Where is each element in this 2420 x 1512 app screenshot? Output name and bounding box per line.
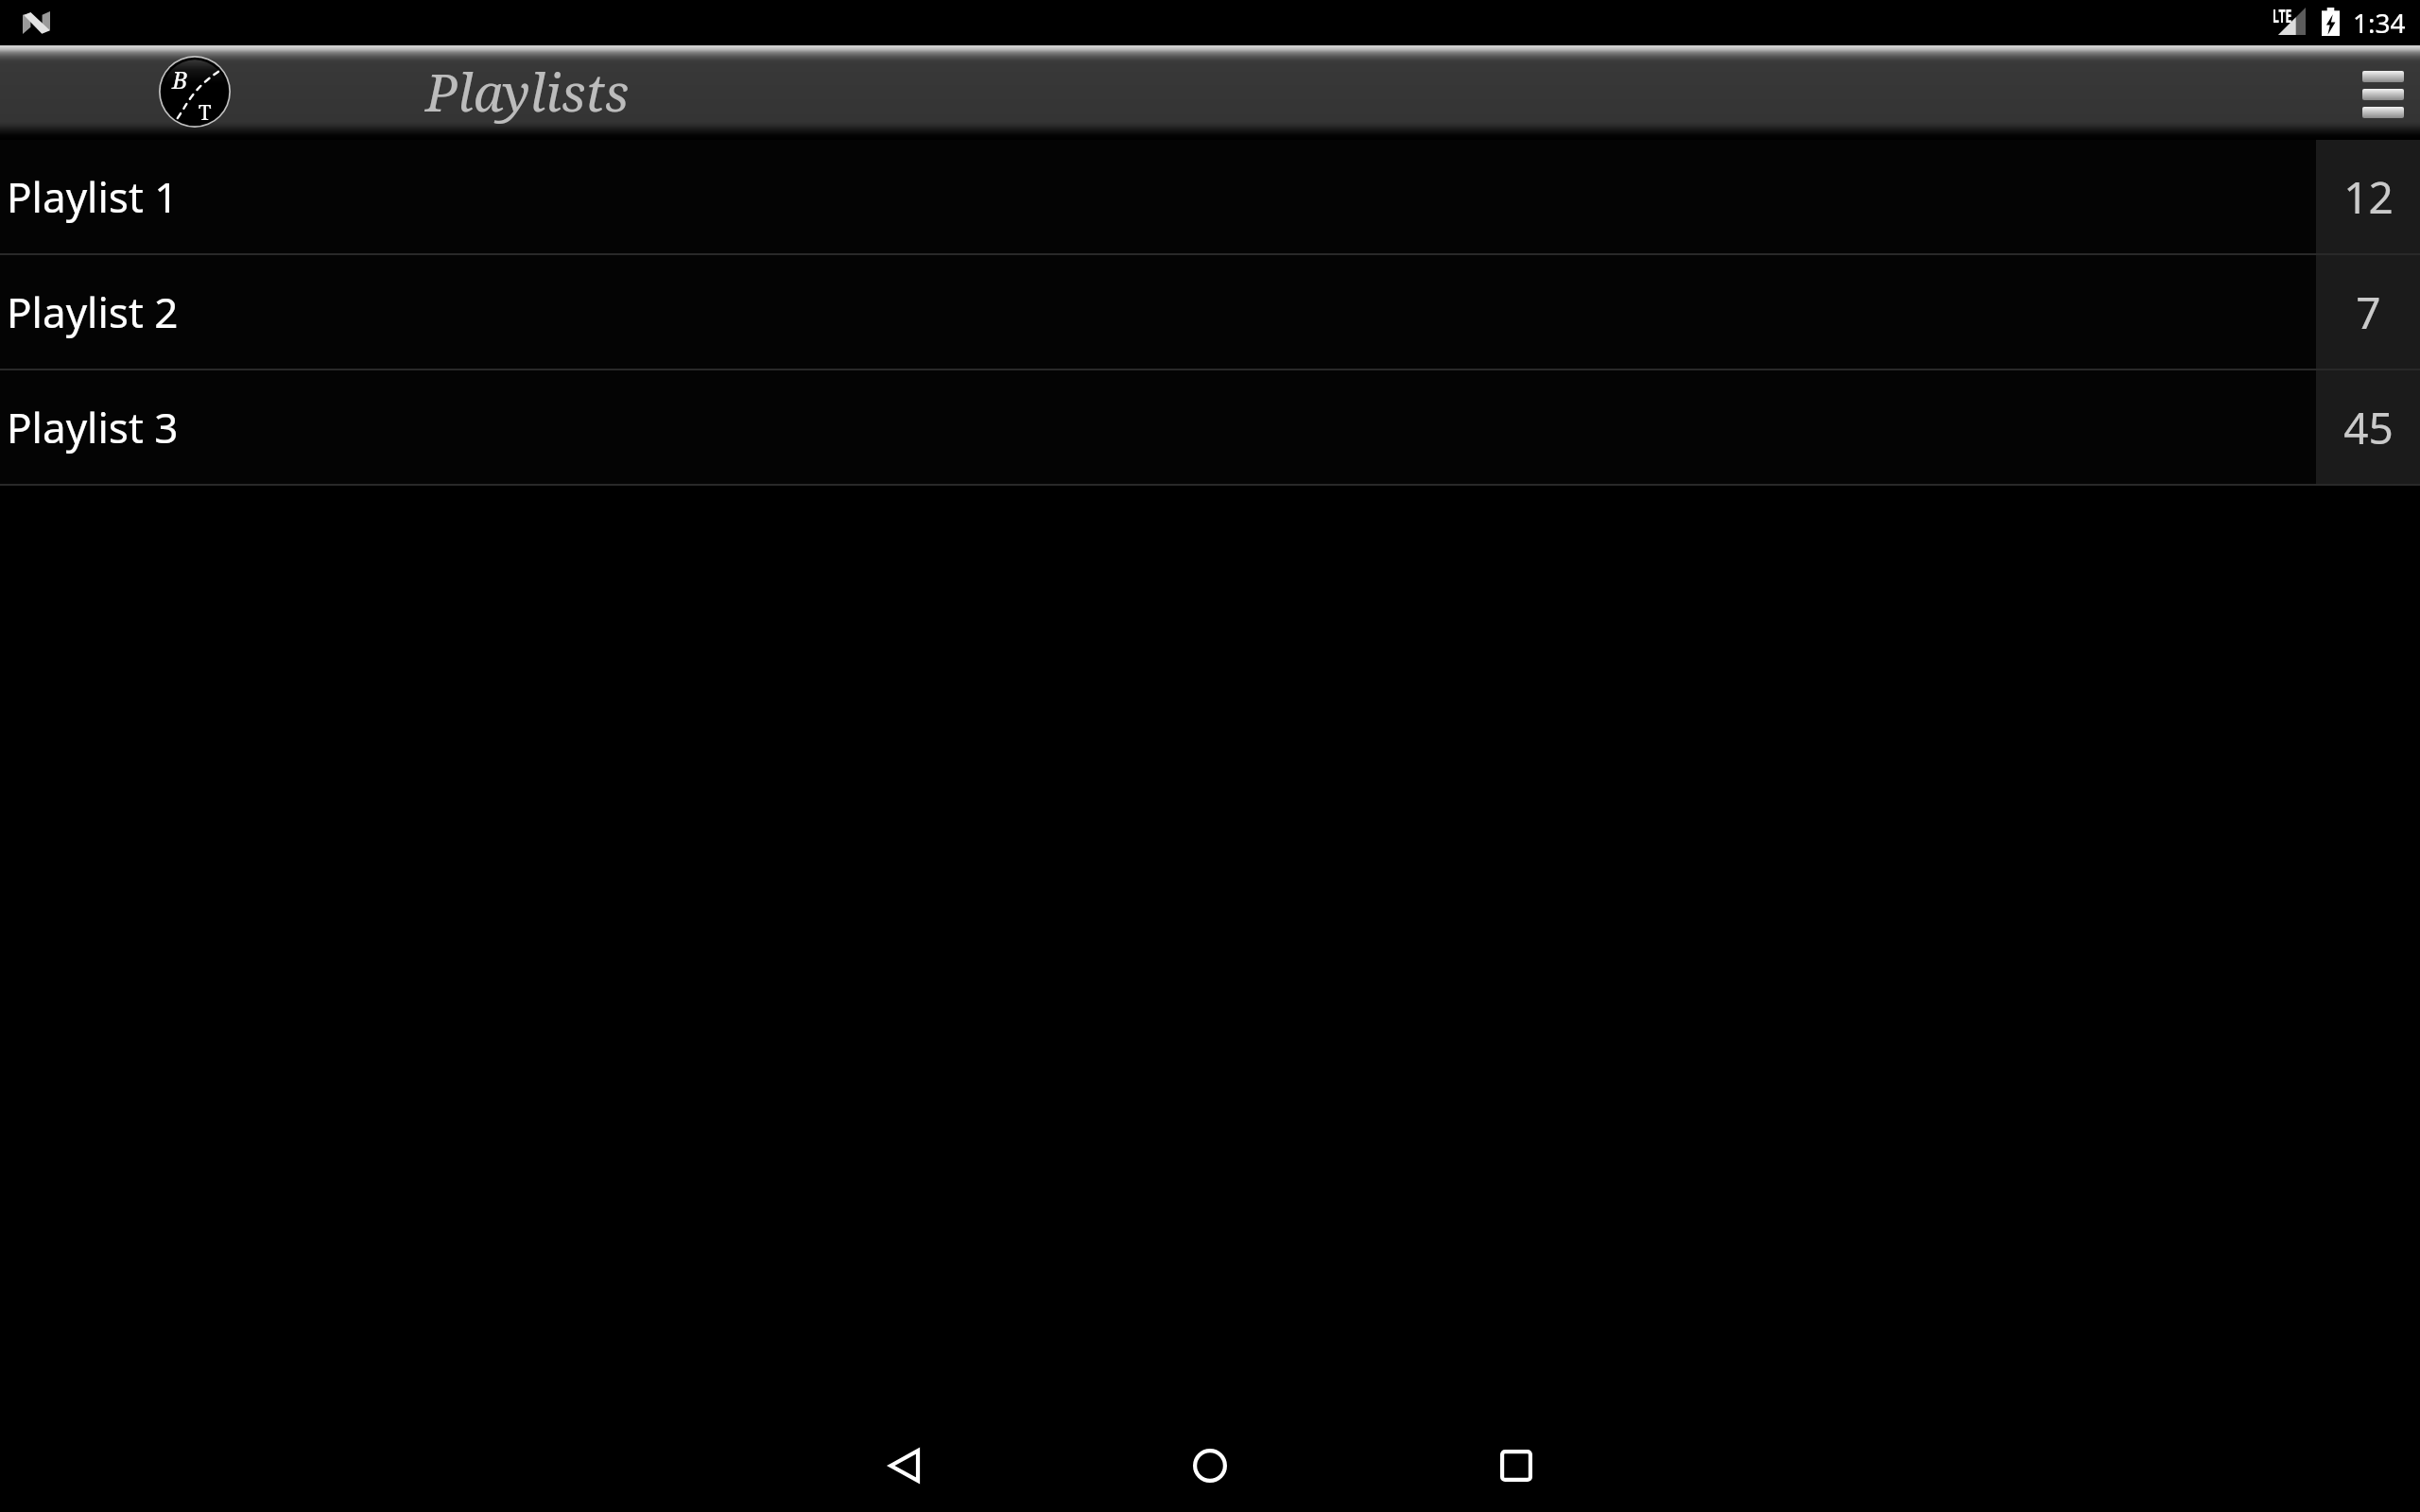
staticText: Playlist 2 — [7, 283, 2316, 340]
staticText: 12 — [2343, 167, 2394, 227]
staticText: Playlist 1 — [7, 168, 2316, 225]
staticText: T — [199, 97, 212, 126]
button[interactable]: App logo — [159, 56, 231, 128]
button[interactable]: Menu — [2322, 45, 2420, 138]
staticText: Playlist 3 — [7, 399, 2316, 455]
staticText: 1:34 — [2353, 5, 2406, 41]
staticText: LTE — [2273, 4, 2292, 28]
button[interactable]: Playlist 1 — [0, 140, 2420, 253]
button[interactable]: Home — [1165, 1420, 1255, 1511]
staticText: 7 — [2356, 283, 2381, 342]
staticText: B — [172, 63, 188, 95]
button[interactable]: Playlist 2 — [0, 255, 2420, 369]
button[interactable]: Playlist 3 — [0, 370, 2420, 484]
staticText: Playlists — [425, 56, 630, 127]
button[interactable]: Recent apps — [1471, 1420, 1562, 1511]
button[interactable]: Back — [858, 1420, 949, 1511]
staticText: 45 — [2343, 398, 2394, 457]
